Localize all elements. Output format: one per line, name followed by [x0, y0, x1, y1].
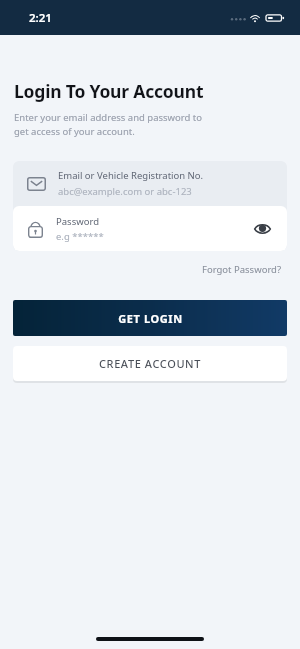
button[interactable]: GET LOGIN	[13, 300, 287, 336]
button[interactable]: Forgot Password?	[198, 259, 286, 280]
button[interactable]: CREATE ACCOUNT	[13, 346, 287, 381]
staticText: GET LOGIN	[118, 311, 183, 326]
staticText: Forgot Password?	[202, 263, 282, 276]
staticText: e.g ******	[56, 230, 104, 243]
button[interactable]: Password	[13, 206, 287, 251]
button[interactable]: Email or Vehicle Registration No.	[13, 161, 287, 206]
staticText: Email or Vehicle Registration No.	[58, 169, 204, 182]
staticText: abc@example.com or abc-123	[58, 185, 192, 198]
staticText: Login To Your Account	[14, 79, 204, 103]
staticText: Enter your email address and password to…	[14, 111, 210, 138]
staticText: 2:21	[29, 10, 52, 26]
staticText: Password	[56, 215, 99, 228]
staticText: CREATE ACCOUNT	[99, 356, 202, 371]
button[interactable]: Show password	[249, 216, 275, 242]
